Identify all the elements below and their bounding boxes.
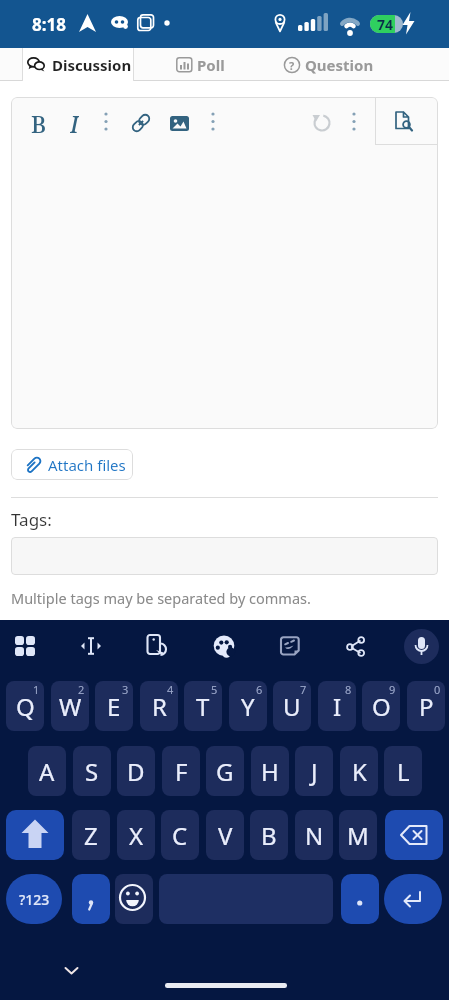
button[interactable]: F — [162, 746, 200, 796]
button[interactable]: U — [273, 681, 311, 731]
staticText: M — [347, 819, 369, 852]
staticText: V — [218, 819, 233, 852]
staticText: J — [311, 755, 318, 788]
button[interactable]: L — [384, 746, 422, 796]
staticText: P — [419, 690, 434, 723]
staticText: 6 — [256, 682, 263, 696]
staticText: D — [127, 755, 145, 788]
staticText: I — [70, 108, 79, 138]
button[interactable]: I — [318, 681, 356, 731]
button[interactable]: J — [295, 746, 333, 796]
button[interactable]: D — [117, 746, 155, 796]
staticText: N — [305, 819, 324, 852]
button[interactable]: A — [28, 746, 66, 796]
button[interactable]: I — [62, 108, 86, 138]
button[interactable] — [140, 48, 250, 81]
button[interactable]: M — [339, 810, 377, 860]
button[interactable] — [385, 810, 443, 860]
button[interactable]: Z — [72, 810, 110, 860]
staticText: G — [216, 755, 234, 788]
staticText: Poll — [197, 55, 225, 75]
staticText: Discussion — [52, 55, 132, 75]
button[interactable]: S — [73, 746, 111, 796]
button[interactable]: X — [117, 810, 155, 860]
button[interactable] — [11, 537, 438, 575]
button[interactable] — [404, 629, 439, 664]
staticText: F — [175, 755, 188, 788]
button[interactable] — [115, 874, 153, 924]
button[interactable]: O — [362, 681, 400, 731]
button[interactable]: T — [184, 681, 222, 731]
staticText: U — [283, 690, 301, 723]
button[interactable] — [79, 637, 103, 655]
staticText: O — [372, 690, 391, 723]
button[interactable]: N — [295, 810, 333, 860]
button[interactable]: V — [206, 810, 244, 860]
staticText: Question — [305, 55, 374, 75]
button[interactable]: Y — [229, 681, 267, 731]
button[interactable]: R — [140, 681, 178, 731]
staticText: Attach files — [48, 455, 126, 475]
staticText: T — [196, 690, 210, 723]
button[interactable] — [375, 97, 438, 145]
staticText: Multiple tags may be separated by commas… — [11, 588, 311, 608]
staticText: ?123 — [19, 890, 50, 909]
staticText: B — [31, 108, 47, 138]
staticText: Z — [84, 819, 98, 852]
staticText: 5 — [211, 682, 218, 696]
button[interactable] — [72, 874, 110, 924]
button[interactable]: Q — [6, 681, 44, 731]
staticText: 8 — [345, 682, 352, 696]
staticText: I — [333, 690, 342, 723]
button[interactable] — [312, 113, 333, 133]
button[interactable]: P — [407, 681, 445, 731]
staticText: K — [352, 755, 367, 788]
button[interactable] — [279, 635, 301, 657]
button[interactable] — [15, 636, 35, 656]
button[interactable] — [64, 966, 79, 976]
button[interactable] — [346, 636, 366, 656]
button[interactable]: B — [250, 810, 288, 860]
staticText: R — [152, 690, 167, 723]
staticText: 8:18 — [32, 13, 66, 36]
button[interactable]: Attach files — [11, 449, 133, 480]
button[interactable]: E — [95, 681, 133, 731]
staticText: B — [261, 819, 277, 852]
button[interactable] — [384, 874, 442, 924]
staticText: H — [261, 755, 279, 788]
button[interactable] — [130, 114, 152, 132]
staticText: X — [129, 819, 144, 852]
staticText: Y — [241, 690, 255, 723]
button[interactable]: K — [340, 746, 378, 796]
button[interactable] — [209, 111, 217, 133]
staticText: 1 — [33, 682, 40, 696]
button[interactable] — [170, 116, 190, 132]
staticText: C — [172, 819, 188, 852]
button[interactable] — [146, 633, 168, 660]
staticText: 3 — [122, 682, 129, 696]
button[interactable] — [22, 48, 134, 81]
staticText: Tags: — [11, 508, 52, 531]
staticText: L — [397, 755, 410, 788]
button[interactable] — [394, 111, 414, 132]
staticText: Q — [16, 690, 35, 723]
button[interactable]: W — [51, 681, 89, 731]
button[interactable]: G — [206, 746, 244, 796]
button[interactable] — [6, 874, 62, 924]
button[interactable] — [350, 111, 358, 133]
button[interactable] — [260, 48, 390, 81]
staticText: 74 — [377, 15, 394, 34]
staticText: W — [59, 690, 82, 723]
staticText: S — [85, 755, 99, 788]
button[interactable]: H — [251, 746, 289, 796]
button[interactable]: C — [161, 810, 199, 860]
button[interactable] — [6, 810, 64, 860]
button[interactable] — [213, 635, 235, 657]
button[interactable]: B — [27, 108, 51, 138]
button[interactable] — [102, 111, 110, 133]
staticText: ? — [289, 58, 295, 73]
button[interactable] — [341, 874, 379, 924]
staticText: E — [107, 690, 121, 723]
